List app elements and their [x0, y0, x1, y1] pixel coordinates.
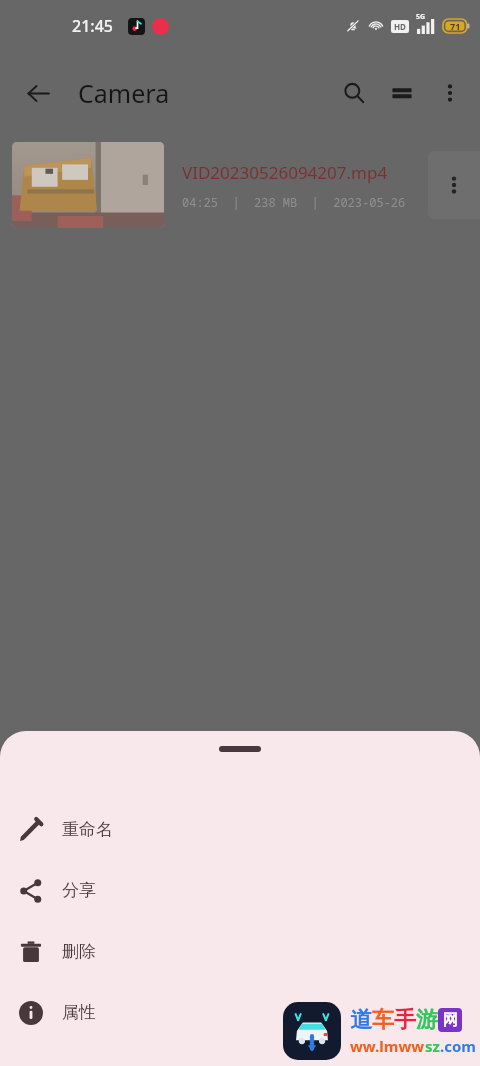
button[interactable]: 删除	[0, 921, 480, 982]
staticText: ww.lmww	[350, 1036, 425, 1056]
staticText: 网	[443, 1011, 458, 1030]
button[interactable]: Back	[14, 69, 62, 117]
staticText: 重命名	[62, 819, 113, 840]
button[interactable]: VID20230526094207.mp4	[0, 130, 480, 240]
staticText: 属性	[62, 1002, 96, 1023]
staticText: 删除	[62, 941, 96, 962]
staticText: 71	[450, 20, 461, 32]
button[interactable]: More options	[426, 69, 474, 117]
staticText: 21:45	[72, 15, 113, 37]
staticText: Camera	[78, 76, 170, 110]
staticText: 游	[416, 1006, 438, 1034]
staticText: 04:25 | 238 MB | 2023-05-26	[182, 194, 406, 210]
staticText: sz	[425, 1036, 440, 1056]
staticText: 5G	[416, 12, 426, 22]
button[interactable]: Item options	[428, 151, 480, 219]
button[interactable]: Search	[330, 69, 378, 117]
button[interactable]: 分享	[0, 860, 480, 921]
staticText: 手	[394, 1006, 416, 1034]
staticText: HD	[394, 21, 406, 32]
button[interactable]: 属性	[0, 982, 480, 1043]
staticText: 分享	[62, 880, 96, 901]
button[interactable]: View mode	[378, 69, 426, 117]
staticText: 车	[372, 1006, 394, 1034]
staticText: .com	[440, 1036, 476, 1056]
staticText: VID20230526094207.mp4	[182, 161, 388, 184]
staticText: 道	[350, 1006, 372, 1034]
button[interactable]: 重命名	[0, 799, 480, 860]
